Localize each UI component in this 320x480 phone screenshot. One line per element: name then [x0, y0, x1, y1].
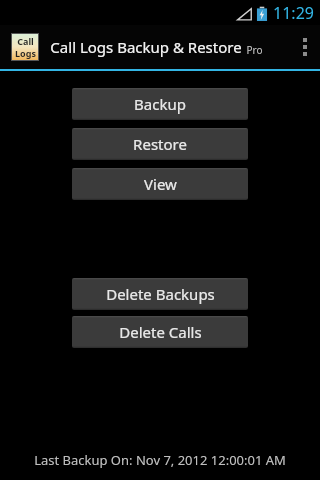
button[interactable]: More options: [290, 25, 320, 69]
button[interactable]: Backup: [72, 88, 248, 120]
staticText: Logs: [15, 47, 36, 59]
button[interactable]: View: [72, 168, 248, 200]
staticText: Delete Calls: [119, 322, 202, 342]
staticText: 11:29: [273, 2, 314, 24]
staticText: Call: [17, 35, 34, 47]
staticText: Restore: [133, 134, 187, 154]
staticText: Backup: [134, 94, 186, 114]
staticText: Delete Backups: [106, 284, 215, 304]
staticText: Pro: [246, 43, 263, 57]
staticText: View: [144, 174, 177, 194]
button[interactable]: Restore: [72, 128, 248, 160]
button[interactable]: Delete Calls: [72, 316, 248, 348]
staticText: Call Logs Backup & Restore: [50, 37, 242, 57]
staticText: Last Backup On: Nov 7, 2012 12:00:01 AM: [34, 451, 286, 469]
button[interactable]: Delete Backups: [72, 278, 248, 310]
